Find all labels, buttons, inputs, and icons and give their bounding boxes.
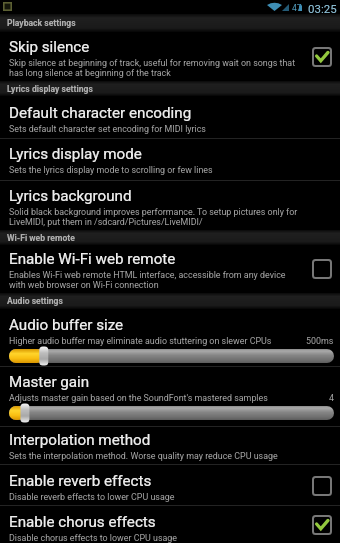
staticText: Sets default character set encoding for … bbox=[9, 124, 206, 134]
staticText: Skip silence at beginning of track, usef… bbox=[9, 58, 296, 78]
staticText: Lyrics display settings bbox=[7, 84, 93, 94]
staticText: Wi-Fi web remote bbox=[7, 233, 75, 243]
staticText: Audio buffer size bbox=[9, 316, 124, 334]
staticText: Interpolation method bbox=[9, 431, 151, 449]
button[interactable]: Unchecked bbox=[0, 245, 340, 293]
button[interactable]: Audio buffer size bbox=[0, 309, 340, 367]
staticText: Higher audio buffer may eliminate audio … bbox=[9, 336, 272, 346]
staticText: Solid black background improves performa… bbox=[9, 207, 298, 227]
staticText: Sets the lyrics display mode to scrollin… bbox=[9, 165, 213, 175]
staticText: Skip silence bbox=[9, 38, 90, 56]
button[interactable]: Unchecked bbox=[308, 255, 336, 283]
staticText: 47 bbox=[292, 3, 302, 13]
staticText: Sets the interpolation method. Worse qua… bbox=[9, 451, 278, 461]
staticText: 4 bbox=[329, 393, 334, 403]
staticText: Enables Wi-Fi web remote HTML interface,… bbox=[9, 270, 286, 290]
button[interactable]: Checked bbox=[0, 32, 340, 81]
staticText: 03:25 bbox=[308, 2, 337, 15]
button[interactable]: Checked bbox=[0, 506, 340, 543]
button[interactable]: Unchecked bbox=[0, 465, 340, 506]
staticText: Audio settings bbox=[7, 296, 63, 306]
staticText: 500ms bbox=[306, 336, 334, 346]
staticText: Adjusts master gain based on the SoundFo… bbox=[9, 393, 268, 403]
staticText: Enable chorus effects bbox=[9, 513, 156, 531]
staticText: Enable reverb effects bbox=[9, 472, 152, 490]
staticText: Lyrics display mode bbox=[9, 145, 142, 163]
button[interactable]: Unchecked bbox=[308, 472, 336, 500]
button[interactable]: Interpolation method bbox=[0, 427, 340, 465]
button[interactable]: Checked bbox=[308, 511, 336, 539]
staticText: Playback settings bbox=[7, 18, 76, 28]
staticText: Default character encoding bbox=[9, 104, 192, 122]
button[interactable]: Default character encoding bbox=[0, 96, 340, 139]
button[interactable]: Lyrics display mode bbox=[0, 139, 340, 181]
staticText: Disable chorus effects to lower CPU usag… bbox=[9, 533, 178, 543]
staticText: Master gain bbox=[9, 373, 90, 391]
staticText: Enable Wi-Fi web remote bbox=[9, 250, 176, 268]
staticText: Disable reverb effects to lower CPU usag… bbox=[9, 492, 175, 502]
button[interactable]: Checked bbox=[308, 43, 336, 71]
staticText: Lyrics background bbox=[9, 187, 132, 205]
button[interactable]: Master gain bbox=[0, 367, 340, 427]
button[interactable]: Lyrics background bbox=[0, 181, 340, 230]
